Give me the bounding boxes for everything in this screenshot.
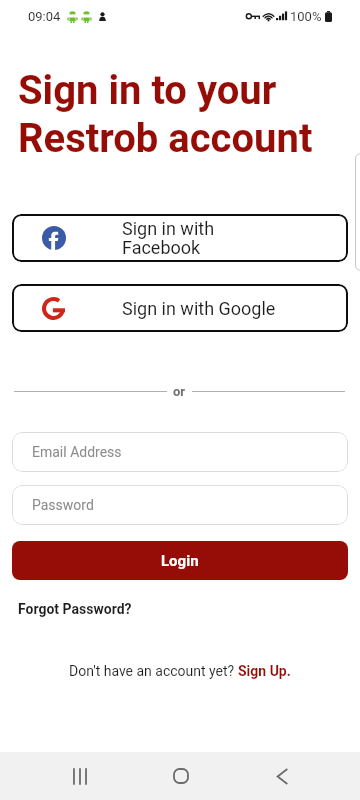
button[interactable]: Sign Up. <box>238 663 291 679</box>
staticText: Sign in with Google <box>122 298 276 319</box>
staticText: Sign in to your Restrob account <box>18 67 313 162</box>
staticText: 09:04 <box>28 9 61 24</box>
staticText: Password <box>32 497 94 513</box>
button[interactable]: Sign in with Google <box>12 284 348 332</box>
staticText: or <box>173 384 186 399</box>
staticText: Sign in with Facebook <box>122 218 215 259</box>
button[interactable]: Sign in with Facebook <box>12 214 348 262</box>
button[interactable]: Forgot Password? <box>18 601 132 617</box>
staticText: Login <box>161 552 199 570</box>
staticText: Don't have an account yet? <box>69 663 238 679</box>
button[interactable]: Back <box>245 752 318 800</box>
staticText: Email Address <box>32 444 122 460</box>
button[interactable]: Recent apps <box>43 752 116 800</box>
button[interactable]: Home <box>144 752 217 800</box>
button[interactable]: Password <box>12 485 348 525</box>
staticText: 100% <box>290 9 322 24</box>
button[interactable]: Email Address <box>12 432 348 472</box>
button[interactable]: Login <box>12 541 348 580</box>
